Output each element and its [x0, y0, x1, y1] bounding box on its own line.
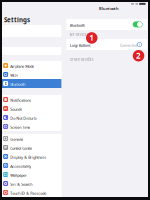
staticText: Siri & Search: [10, 182, 32, 187]
staticText: Wallpaper: [10, 173, 27, 178]
staticText: Wi-Fi: [10, 73, 18, 78]
staticText: Bluetooth: [70, 23, 85, 28]
button[interactable]: Sounds: [2, 104, 61, 113]
button[interactable]: Screen Time: [2, 122, 61, 131]
staticText: Do Not Disturb: [10, 116, 36, 121]
button[interactable]: Bluetooth: [66, 19, 147, 30]
staticText: Control Centre: [10, 146, 32, 151]
staticText: MY DEVICES: [70, 33, 89, 37]
staticText: Notifications: [10, 98, 31, 103]
staticText: 1: [89, 32, 94, 43]
staticText: Accessibility: [10, 164, 31, 169]
staticText: Touch ID & Passcode: [10, 191, 46, 196]
button[interactable]: Airplane Mode: [2, 61, 61, 70]
button[interactable]: Control Centre: [2, 143, 61, 152]
button[interactable]: Bluetooth: [2, 79, 61, 88]
staticText: Luigi Buttons: [70, 43, 91, 48]
button[interactable]: Notifications: [2, 95, 61, 104]
staticText: Settings: [4, 16, 30, 24]
staticText: Bluetooth: [99, 6, 119, 11]
staticText: Connected: [120, 43, 137, 48]
staticText: Display & Brightness: [10, 155, 46, 160]
button[interactable]: General: [2, 134, 61, 143]
staticText: OTHER DEVICES: [70, 58, 94, 62]
button[interactable]: Luigi Buttons: [66, 39, 147, 50]
button[interactable]: Accessibility: [2, 161, 61, 170]
button[interactable]: Wallpaper: [2, 170, 61, 179]
staticText: Bluetooth: [10, 82, 25, 87]
staticText: General: [10, 137, 23, 142]
staticText: Screen Time: [10, 125, 30, 130]
staticText: i: [139, 42, 140, 47]
button[interactable]: Do Not Disturb: [2, 113, 61, 122]
button[interactable]: Wi-Fi: [2, 70, 61, 79]
staticText: Sounds: [10, 107, 22, 112]
staticText: Airplane Mode: [10, 64, 34, 69]
button[interactable]: Touch ID & Passcode: [2, 188, 61, 197]
button[interactable]: Siri & Search: [2, 179, 61, 188]
staticText: 2: [136, 50, 141, 61]
button[interactable]: Display & Brightness: [2, 152, 61, 161]
